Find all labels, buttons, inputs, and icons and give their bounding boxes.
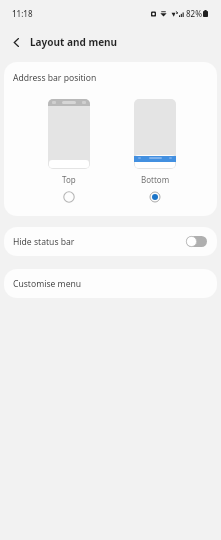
button[interactable]: Customise menu (4, 269, 217, 298)
button[interactable]: Top (48, 99, 90, 203)
staticText: Address bar position (13, 72, 97, 84)
staticText: Hide status bar (13, 236, 75, 248)
button[interactable]: Hide status bar (4, 227, 217, 256)
staticText: Top (62, 174, 76, 185)
button[interactable]: Hide status bar toggle (186, 236, 207, 247)
button[interactable]: Back (6, 32, 26, 52)
staticText: Bottom (141, 174, 170, 185)
button[interactable]: Bottom (134, 99, 176, 203)
staticText: 82% (186, 8, 202, 19)
staticText: 11:18 (12, 8, 33, 19)
staticText: Customise menu (13, 278, 82, 290)
staticText: Layout and menu (30, 35, 118, 49)
